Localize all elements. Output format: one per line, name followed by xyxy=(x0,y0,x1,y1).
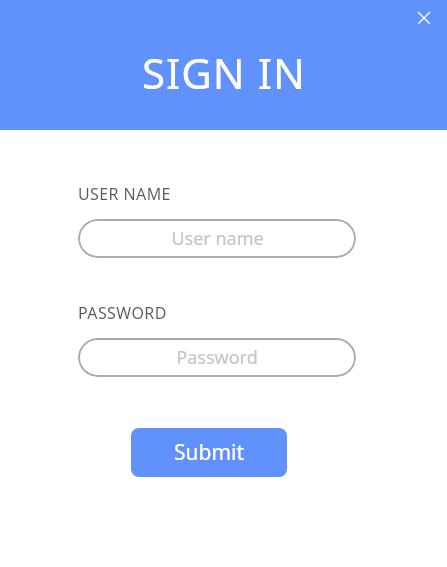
button[interactable]: Close xyxy=(410,4,438,32)
button[interactable]: User name xyxy=(78,219,356,258)
button[interactable]: Password xyxy=(78,338,356,377)
staticText: PASSWORD xyxy=(78,302,167,324)
staticText: User name xyxy=(171,226,264,251)
staticText: USER NAME xyxy=(78,183,171,205)
staticText: Password xyxy=(176,345,258,370)
button[interactable]: Submit xyxy=(131,428,287,477)
staticText: Submit xyxy=(174,438,245,467)
staticText: SIGN IN xyxy=(142,44,306,101)
